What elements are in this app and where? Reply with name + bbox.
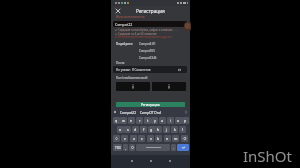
staticText: e <box>130 118 133 123</box>
button[interactable]: Compot22 <box>120 110 137 114</box>
staticText: i <box>170 118 171 123</box>
button[interactable]: ?123 <box>113 144 122 151</box>
staticText: Содержит от 4 до 64 символов <box>118 32 157 36</box>
staticText: a <box>119 127 122 132</box>
button[interactable]: b <box>155 135 162 142</box>
button[interactable]: Space <box>136 144 170 151</box>
staticText: v <box>150 136 152 141</box>
staticText: n <box>166 136 169 141</box>
button[interactable]: , <box>123 144 128 151</box>
button[interactable]: d <box>132 126 139 133</box>
staticText: s <box>127 127 129 132</box>
staticText: u <box>161 118 164 123</box>
button[interactable]: Password field <box>116 82 150 91</box>
staticText: Compot22 <box>115 22 133 27</box>
staticText: Не используйте имя пользователя другого <box>118 35 172 39</box>
staticText: m <box>174 136 178 141</box>
staticText: Имя пользователя <box>116 15 145 19</box>
button[interactable]: a <box>117 126 124 133</box>
button[interactable]: g <box>148 126 155 133</box>
staticText: t <box>147 118 149 123</box>
staticText: c <box>141 136 143 141</box>
button[interactable]: i <box>167 117 174 124</box>
button[interactable]: Keyboard menu <box>113 110 117 114</box>
staticText: y <box>154 118 156 123</box>
staticText: b <box>157 136 160 141</box>
staticText: j <box>166 127 167 132</box>
button[interactable]: e <box>128 117 135 124</box>
button[interactable]: Emoji <box>129 144 135 151</box>
button[interactable]: u <box>159 117 166 124</box>
staticText: z <box>124 136 126 141</box>
button[interactable]: l <box>179 126 186 133</box>
staticText: Не указан Я Самолетов <box>116 68 151 72</box>
button[interactable]: t <box>144 117 151 124</box>
staticText: , <box>125 146 126 150</box>
staticText: . <box>173 146 174 150</box>
button[interactable]: v <box>147 135 154 142</box>
button[interactable]: More <box>184 110 188 114</box>
button[interactable]: z <box>121 135 128 142</box>
button[interactable]: . <box>171 144 176 151</box>
staticText: k <box>174 127 176 132</box>
staticText: r <box>139 118 141 123</box>
staticText: Подобрать: <box>116 42 133 46</box>
button[interactable]: Password field <box>152 82 186 91</box>
button[interactable]: Регистрация <box>116 102 185 108</box>
button[interactable]: q <box>113 117 120 124</box>
staticText: Compot555 <box>139 49 155 53</box>
staticText: Пол (необязательный) <box>116 76 148 80</box>
button[interactable]: n <box>164 135 171 142</box>
staticText: q <box>115 118 118 123</box>
button[interactable]: h <box>155 126 162 133</box>
staticText: Содержит только буквы, цифры и символы: … <box>118 28 177 32</box>
button[interactable]: Close <box>114 7 122 15</box>
button[interactable]: f <box>140 126 147 133</box>
staticText: h <box>157 127 160 132</box>
staticText: Compot2346 <box>139 56 157 60</box>
button[interactable]: Enter <box>177 144 189 151</box>
button[interactable]: x <box>130 135 137 142</box>
staticText: p <box>184 118 187 123</box>
staticText: o <box>177 118 180 123</box>
button[interactable]: Nav <box>166 157 173 164</box>
staticText: x <box>133 136 135 141</box>
button[interactable]: y <box>151 117 158 124</box>
button[interactable]: Backspace <box>181 135 188 142</box>
button[interactable]: Shift <box>113 135 120 142</box>
staticText: l <box>182 127 183 132</box>
staticText: ?123 <box>115 146 121 150</box>
button[interactable]: s <box>124 126 131 133</box>
button[interactable]: Compot22 <box>113 21 187 27</box>
staticText: Compot4 81 <box>139 42 156 46</box>
button[interactable]: Nav <box>147 157 154 164</box>
button[interactable]: c <box>138 135 145 142</box>
button[interactable]: m <box>172 135 179 142</box>
staticText: InShOt <box>243 146 292 166</box>
button[interactable]: j <box>163 126 170 133</box>
button[interactable]: p <box>182 117 189 124</box>
button[interactable]: r <box>136 117 143 124</box>
button[interactable]: w <box>120 117 127 124</box>
staticText: f <box>143 127 145 132</box>
button[interactable]: CompOT Dnd <box>140 110 161 114</box>
staticText: Почта <box>116 61 125 65</box>
staticText: g <box>150 127 153 132</box>
button[interactable]: Nav <box>128 157 135 164</box>
staticText: w <box>122 118 125 123</box>
button[interactable]: k <box>171 126 178 133</box>
button[interactable]: o <box>175 117 182 124</box>
staticText: Регистрация <box>136 8 165 14</box>
staticText: Регистрация <box>141 103 160 107</box>
button[interactable]: Не указан Я Самолетов <box>113 66 187 73</box>
staticText: d <box>134 127 137 132</box>
